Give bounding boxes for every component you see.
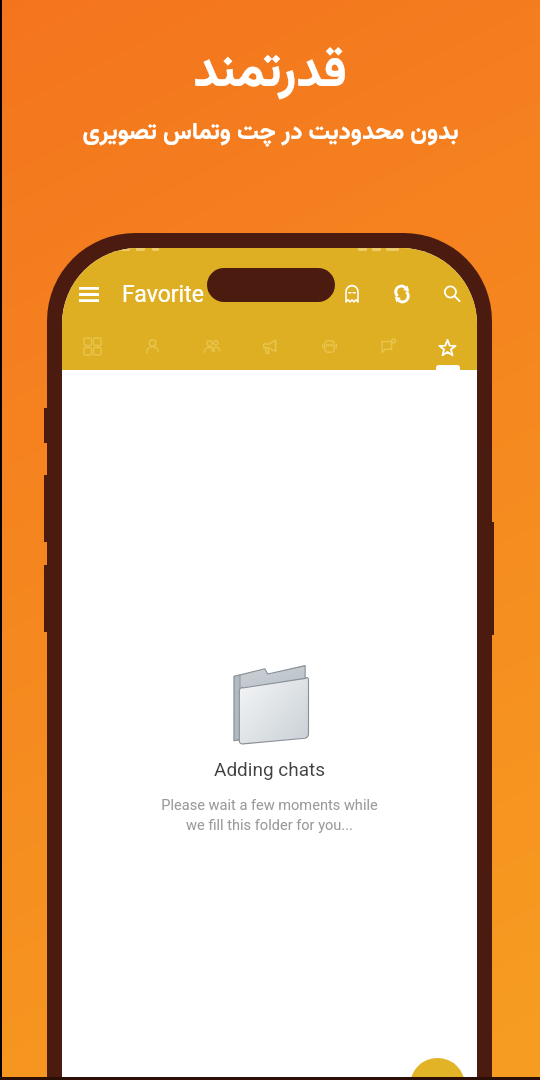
staticText: Adding chats bbox=[214, 758, 326, 780]
button[interactable]: Unread bbox=[359, 324, 418, 370]
staticText: قدرتمند bbox=[193, 35, 347, 113]
staticText: Favorite bbox=[122, 281, 204, 308]
staticText: Please wait a few moments while we fill … bbox=[161, 796, 378, 833]
button[interactable]: Channels bbox=[241, 324, 300, 370]
button[interactable]: All bbox=[62, 324, 122, 370]
button[interactable]: Sync bbox=[385, 277, 419, 311]
button[interactable]: Menu bbox=[72, 277, 106, 311]
button[interactable]: Favorite bbox=[418, 324, 477, 370]
button[interactable]: Contacts bbox=[122, 324, 182, 370]
button[interactable]: New chat bbox=[410, 1058, 465, 1080]
button[interactable]: Bots bbox=[300, 324, 359, 370]
staticText: بدون محدودیت در چت وتماس تصویری bbox=[82, 114, 459, 152]
button[interactable]: Groups bbox=[182, 324, 241, 370]
button[interactable]: Ghost mode bbox=[335, 277, 369, 311]
button[interactable]: Search bbox=[435, 277, 469, 311]
